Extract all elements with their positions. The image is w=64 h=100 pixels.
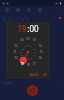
staticText: 13	[32, 38, 36, 42]
button[interactable]: More	[59, 82, 62, 85]
button[interactable]: 19	[17, 23, 27, 34]
button[interactable]: English	[2, 81, 13, 85]
staticText: 16	[38, 56, 42, 60]
staticText: 7	[24, 57, 26, 60]
staticText: 15	[39, 50, 43, 54]
button[interactable]: Add alarm	[27, 85, 38, 96]
button[interactable]: Alarm	[1, 6, 12, 13]
staticText: CANCEL	[29, 73, 39, 77]
staticText: 14	[38, 44, 42, 48]
staticText: 00	[26, 37, 30, 41]
staticText: 19	[20, 62, 24, 66]
button[interactable]: World clock	[12, 6, 23, 13]
button[interactable]: CANCEL	[27, 72, 41, 78]
button[interactable]: :00	[27, 23, 39, 34]
staticText: 19:00	[1, 13, 29, 23]
staticText: 18	[26, 63, 30, 67]
staticText: 5	[30, 57, 32, 60]
staticText: 22	[14, 44, 18, 48]
staticText: 23	[20, 38, 24, 42]
staticText: 9	[20, 51, 22, 54]
staticText: 21	[13, 50, 17, 54]
button[interactable]: Timer	[23, 6, 34, 13]
button[interactable]: 00	[10, 34, 46, 70]
staticText: 12	[27, 44, 30, 47]
staticText: 3	[34, 51, 36, 54]
staticText: 10	[21, 48, 24, 51]
staticText: 17	[32, 62, 36, 66]
staticText: 2	[33, 48, 35, 51]
staticText: 8	[21, 54, 23, 57]
staticText: 6	[27, 58, 29, 61]
staticText: 11	[24, 45, 27, 48]
staticText: 20	[14, 56, 18, 60]
staticText: OK	[43, 73, 47, 77]
button[interactable]: Stopwatch	[34, 6, 45, 13]
button[interactable]: OK	[41, 72, 50, 78]
staticText: 1	[30, 45, 32, 48]
staticText: 4	[33, 54, 35, 57]
